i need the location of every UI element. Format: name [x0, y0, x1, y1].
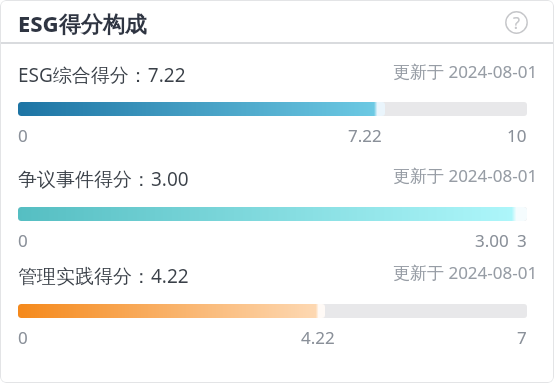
staticText: ESG得分构成 [18, 8, 147, 38]
staticText: 10 [507, 124, 527, 147]
staticText: 更新于 2024-08-01 [393, 60, 538, 83]
staticText: 7.22 [348, 124, 382, 147]
staticText: 管理实践得分：4.22 [18, 263, 189, 289]
staticText: 0 [18, 326, 28, 349]
staticText: 更新于 2024-08-01 [393, 261, 538, 284]
staticText: 0 [18, 124, 28, 147]
staticText: ? [513, 12, 520, 34]
staticText: 3.00 [475, 229, 509, 252]
staticText: 7 [517, 326, 527, 349]
staticText: 争议事件得分：3.00 [18, 166, 189, 192]
staticText: ESG综合得分：7.22 [18, 62, 186, 88]
staticText: 更新于 2024-08-01 [393, 164, 538, 187]
staticText: 3 [517, 229, 527, 252]
staticText: 4.22 [301, 326, 335, 349]
button[interactable]: Help [505, 11, 528, 34]
staticText: 0 [18, 229, 28, 252]
